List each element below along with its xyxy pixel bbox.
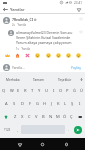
button[interactable]: M xyxy=(54,110,61,123)
button[interactable]: B xyxy=(40,110,47,123)
button[interactable]: Shift xyxy=(0,110,11,123)
button[interactable]: Home xyxy=(38,140,47,149)
button[interactable]: Ü xyxy=(78,84,85,97)
button[interactable]: Emoji reaction xyxy=(55,52,61,58)
button[interactable]: Share xyxy=(75,6,82,13)
button[interactable]: D xyxy=(18,97,26,110)
button[interactable]: Yanıtla... xyxy=(12,66,70,70)
staticText: ?123 xyxy=(4,128,11,132)
button[interactable]: O xyxy=(57,84,64,97)
staticText: Paylaş xyxy=(71,66,81,70)
button[interactable]: Z xyxy=(11,110,19,123)
staticText: A xyxy=(5,101,8,107)
staticText: B xyxy=(42,114,45,120)
staticText: Yanıtla... xyxy=(12,66,25,70)
button[interactable]: T xyxy=(29,84,36,97)
staticText: Yorum altaya yazmaya çalışıyorum xyxy=(16,40,72,45)
staticText: X xyxy=(21,114,24,120)
button[interactable]: Teşekkür xyxy=(52,75,78,84)
staticText: G xyxy=(36,101,39,107)
staticText: Z xyxy=(14,114,17,120)
button[interactable]: A xyxy=(2,97,10,110)
button[interactable]: Send xyxy=(72,125,84,134)
button[interactable]: J xyxy=(48,97,55,110)
staticText: Q xyxy=(2,88,6,94)
button[interactable]: R xyxy=(22,84,29,97)
button[interactable]: G xyxy=(34,97,41,110)
button[interactable]: V xyxy=(33,110,40,123)
button[interactable]: I xyxy=(50,84,57,97)
staticText: 23:41 xyxy=(74,1,83,5)
button[interactable]: Emoji reaction xyxy=(4,52,10,58)
staticText: J xyxy=(51,101,53,107)
staticText: Y xyxy=(38,88,41,94)
button[interactable]: L xyxy=(62,97,69,110)
button[interactable]: 7Realblak_CI ⊙ xyxy=(3,17,83,27)
button[interactable]: ?123 xyxy=(1,125,14,134)
staticText: Ö xyxy=(63,114,67,120)
staticText: E xyxy=(17,88,20,94)
staticText: S xyxy=(13,101,16,107)
button[interactable]: P xyxy=(64,84,71,97)
button[interactable]: C xyxy=(26,110,33,123)
staticText: V xyxy=(35,114,38,120)
staticText: Ş xyxy=(71,101,74,107)
staticText: M xyxy=(56,114,60,120)
button[interactable]: Ş xyxy=(69,97,76,110)
staticText: C xyxy=(28,114,31,120)
button[interactable]: Emoji reaction xyxy=(75,52,81,58)
staticText: 7Realblak_CI ⊙ xyxy=(12,17,37,22)
button[interactable]: Backspace xyxy=(75,110,85,123)
staticText: Yanıtlar xyxy=(10,7,25,12)
button[interactable]: Y xyxy=(36,84,43,97)
button[interactable]: Emoji reaction xyxy=(65,52,71,58)
button[interactable]: Emoji reaction xyxy=(24,52,30,58)
button[interactable]: N xyxy=(47,110,54,123)
button[interactable]: H xyxy=(41,97,48,110)
button[interactable]: I xyxy=(76,97,83,110)
button[interactable]: U xyxy=(43,84,50,97)
button[interactable]: Back xyxy=(2,6,9,13)
button[interactable]: Emoji reaction xyxy=(45,52,51,58)
button[interactable]: Comma xyxy=(14,125,21,134)
button[interactable]: Merhaba xyxy=(0,75,26,84)
button[interactable]: E xyxy=(15,84,22,97)
staticText: Ç xyxy=(70,114,73,120)
button[interactable]: alimanayifulmel23 Derenin Sonucu xyxy=(8,30,83,51)
button[interactable]: Paylaş xyxy=(70,66,82,70)
staticText: Veren Şifahinin Kutsal Saatlerinde xyxy=(16,35,71,40)
staticText: U xyxy=(45,88,48,94)
button[interactable]: Back xyxy=(15,140,24,149)
staticText: alimanayifulmel23 Derenin Sonucu xyxy=(16,30,73,35)
staticText: Tamam xyxy=(33,78,45,82)
staticText: Merhaba xyxy=(6,78,20,82)
button[interactable]: W xyxy=(8,84,15,97)
staticText: Ü xyxy=(80,88,83,94)
staticText: 2s Yanıtla xyxy=(12,23,27,27)
button[interactable]: Recents xyxy=(62,140,71,149)
button[interactable]: More xyxy=(78,75,85,84)
staticText: H xyxy=(43,101,47,107)
staticText: , xyxy=(17,127,18,132)
button[interactable]: K xyxy=(55,97,62,110)
button[interactable]: Q xyxy=(0,84,8,97)
button[interactable]: Ö xyxy=(61,110,68,123)
button[interactable]: F xyxy=(26,97,34,110)
staticText: W xyxy=(10,88,14,94)
staticText: F xyxy=(29,101,32,107)
button[interactable]: Tamam xyxy=(26,75,52,84)
button[interactable]: Ç xyxy=(68,110,75,123)
staticText: N xyxy=(49,114,53,120)
button[interactable]: X xyxy=(19,110,26,123)
staticText: T xyxy=(31,88,34,94)
staticText: D xyxy=(21,101,24,107)
staticText: . xyxy=(68,127,69,132)
button[interactable]: Emoji reaction xyxy=(34,52,40,58)
button[interactable]: Ğ xyxy=(71,84,78,97)
staticText: P xyxy=(66,88,69,94)
button[interactable]: S xyxy=(10,97,18,110)
staticText: I xyxy=(79,101,81,107)
button[interactable]: Emoji reaction xyxy=(14,52,20,58)
